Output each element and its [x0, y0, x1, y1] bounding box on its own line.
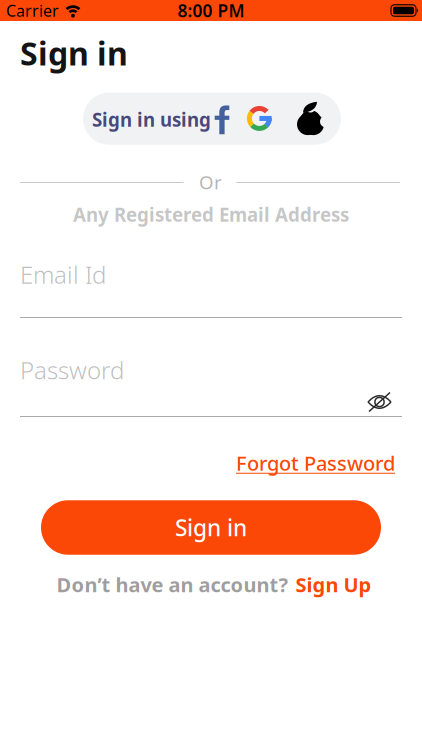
button[interactable]: Sign in with Google — [247, 106, 272, 131]
staticText: Or — [199, 170, 222, 194]
staticText: Sign Up — [295, 571, 371, 598]
staticText: 8:00 PM — [177, 0, 244, 22]
staticText: Email Id — [20, 259, 106, 290]
staticText: Sign in — [175, 512, 247, 542]
staticText: Any Registered Email Address — [73, 202, 349, 227]
button[interactable]: Sign in with Apple — [297, 102, 324, 136]
button[interactable]: Sign Up — [295, 571, 371, 598]
staticText: Sign in — [20, 32, 128, 74]
staticText: Password — [20, 354, 124, 386]
staticText: Carrier — [6, 0, 59, 21]
staticText: Sign in using — [92, 107, 211, 132]
button[interactable]: Sign in — [41, 500, 381, 555]
button[interactable]: Show password — [366, 391, 392, 413]
staticText: Forgot Password — [236, 450, 395, 476]
button[interactable]: Forgot Password — [236, 450, 395, 476]
button[interactable]: Sign in with Facebook — [215, 105, 230, 134]
staticText: Don’t have an account? — [56, 571, 288, 598]
